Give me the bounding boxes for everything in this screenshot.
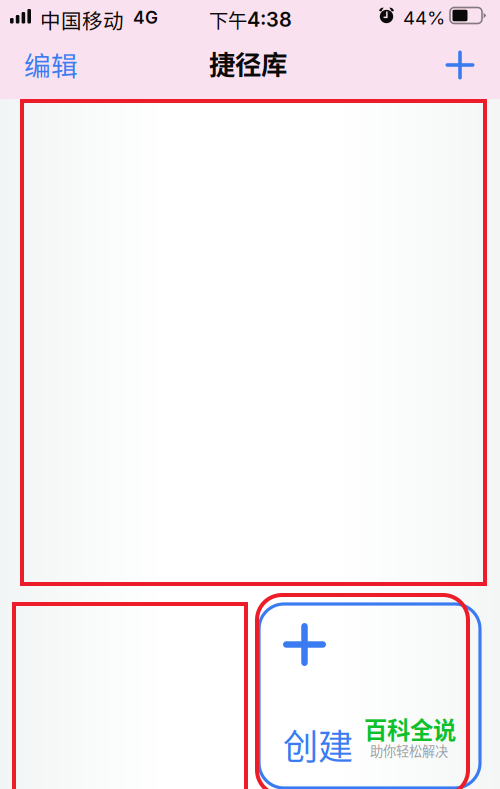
- button[interactable]: Add shortcut: [433, 39, 487, 91]
- staticText: 4:38: [247, 7, 292, 32]
- staticText: 助你轻松解决: [370, 741, 448, 760]
- staticText: 44%: [403, 6, 445, 29]
- button[interactable]: 创建: [259, 604, 480, 788]
- staticText: 4G: [133, 7, 158, 28]
- staticText: 下午: [209, 5, 247, 33]
- staticText: 捷径库: [209, 44, 287, 82]
- staticText: 中国移动: [40, 5, 124, 35]
- staticText: 百科全说: [364, 712, 456, 746]
- button[interactable]: 编辑: [24, 38, 104, 90]
- staticText: 创建: [283, 719, 353, 770]
- staticText: 编辑: [24, 45, 78, 83]
